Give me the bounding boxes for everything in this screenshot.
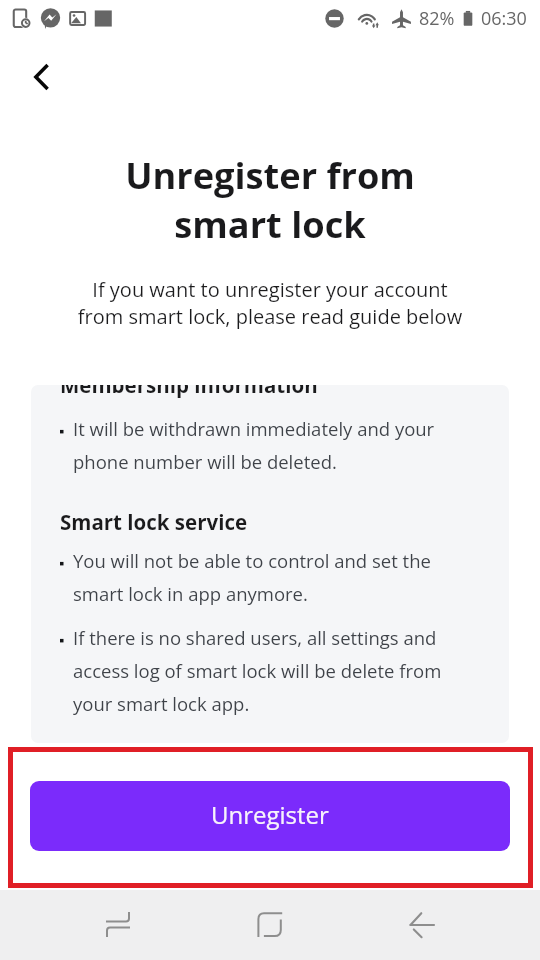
staticText: Smart lock service xyxy=(60,508,248,536)
staticText: Unregister xyxy=(211,798,329,831)
staticText: You will not be able to control and set … xyxy=(73,548,480,606)
button[interactable]: Home xyxy=(238,890,302,960)
button[interactable]: Recent apps xyxy=(86,890,150,960)
staticText: Membership information xyxy=(60,385,318,399)
button[interactable]: Back xyxy=(390,890,454,960)
staticText: 82% xyxy=(419,6,455,31)
staticText: It will be withdrawn immediately and you… xyxy=(73,416,480,474)
staticText: Unregister from smart lock xyxy=(0,150,540,249)
button[interactable]: Back xyxy=(19,54,65,100)
staticText: If there is no shared users, all setting… xyxy=(73,625,480,716)
button[interactable]: Unregister xyxy=(30,781,510,851)
staticText: If you want to unregister your account f… xyxy=(0,276,540,330)
staticText: 06:30 xyxy=(481,6,527,31)
